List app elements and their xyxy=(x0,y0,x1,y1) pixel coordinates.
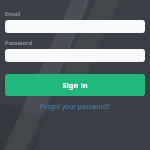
button[interactable]: Forgot your password? xyxy=(5,101,145,112)
staticText: Sign in xyxy=(62,80,88,90)
button[interactable]: Sign in xyxy=(5,74,145,96)
button[interactable]: Password input field xyxy=(5,49,145,62)
staticText: Password xyxy=(5,39,33,47)
staticText: Forgot your password? xyxy=(40,102,110,111)
button[interactable]: Email input field xyxy=(5,20,145,33)
staticText: Email xyxy=(5,10,21,18)
